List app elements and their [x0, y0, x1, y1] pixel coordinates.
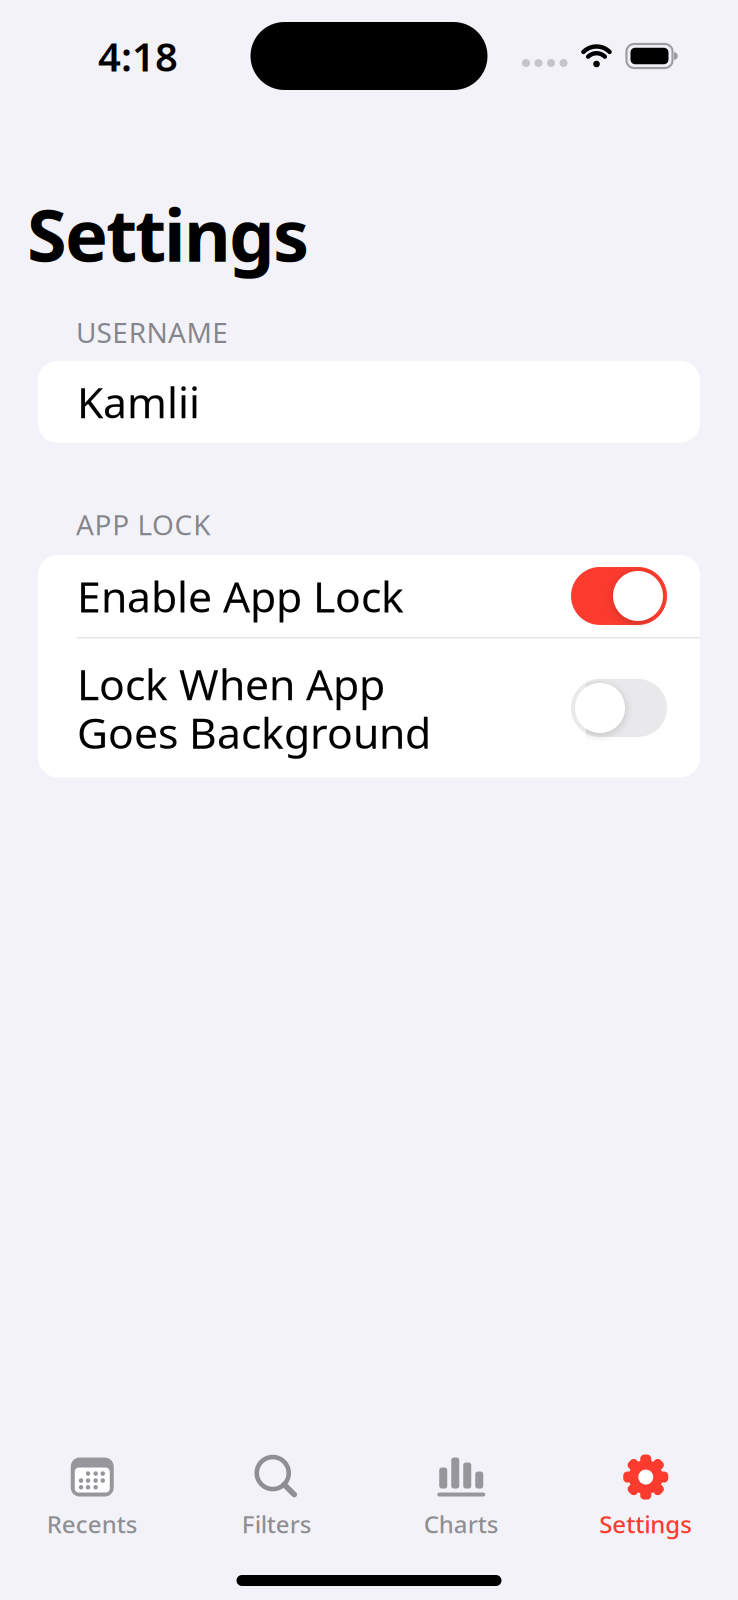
staticText: USERNAME: [76, 314, 228, 351]
button[interactable]: Recents: [0, 1449, 184, 1545]
staticText: APP LOCK: [76, 506, 210, 543]
button[interactable]: Kamlii: [38, 361, 700, 443]
button[interactable]: Lock When App Goes Background: [571, 679, 667, 737]
staticText: Goes Background: [77, 704, 431, 761]
button[interactable]: Enable App Lock: [571, 567, 667, 625]
staticText: Charts: [424, 1508, 499, 1540]
staticText: Enable App Lock: [77, 568, 404, 624]
staticText: Kamlii: [77, 373, 200, 430]
button[interactable]: Charts: [369, 1449, 553, 1545]
staticText: 4:18: [98, 29, 178, 82]
button[interactable]: Filters: [184, 1449, 369, 1545]
staticText: Filters: [242, 1508, 312, 1540]
button[interactable]: Settings: [553, 1449, 738, 1545]
staticText: Settings: [27, 186, 309, 282]
staticText: Recents: [47, 1508, 138, 1540]
staticText: Lock When App: [77, 655, 385, 712]
staticText: Settings: [599, 1508, 692, 1540]
